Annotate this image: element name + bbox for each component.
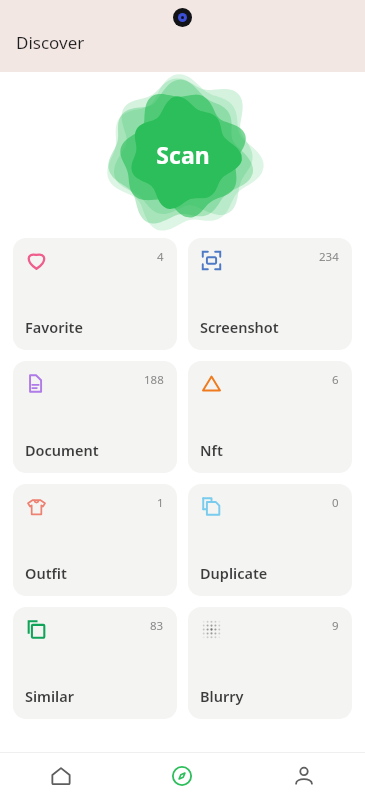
button[interactable]: Profile [243,752,365,800]
staticText: 9 [332,618,339,634]
staticText: 234 [319,249,339,265]
button[interactable]: Duplicate [188,484,352,596]
other: Favorite [25,249,48,272]
button[interactable]: Favorite [13,238,177,350]
button[interactable]: Blurry [188,607,352,719]
staticText: Scan [156,139,210,170]
staticText: 4 [157,249,164,265]
staticText: Nft [200,440,223,460]
staticText: Discover [16,31,85,54]
other: Blurry [200,618,223,641]
other: Similar [25,618,48,641]
staticText: 188 [144,372,164,388]
other: Screenshot [200,249,223,272]
button[interactable]: Discover [121,752,243,800]
other: Outfit [25,495,48,518]
button[interactable]: Scan [97,72,269,236]
staticText: 0 [332,495,339,511]
other: Nft [200,372,223,395]
staticText: Duplicate [200,563,268,583]
button[interactable]: Nft [188,361,352,473]
staticText: 1 [157,495,164,511]
staticText: Blurry [200,686,244,706]
staticText: 83 [150,618,164,634]
staticText: Document [25,440,99,460]
staticText: 6 [332,372,339,388]
button[interactable]: Home [0,752,121,800]
button[interactable]: Similar [13,607,177,719]
other: Duplicate [200,495,223,518]
staticText: Favorite [25,317,83,337]
staticText: Screenshot [200,317,279,337]
other: Document [25,372,48,395]
button[interactable]: Screenshot [188,238,352,350]
staticText: Similar [25,686,74,706]
button[interactable]: Outfit [13,484,177,596]
button[interactable]: Document [13,361,177,473]
staticText: Outfit [25,563,67,583]
